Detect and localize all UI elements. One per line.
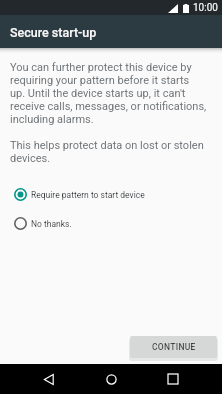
staticText: CONTINUE <box>152 342 196 352</box>
button[interactable]: Home <box>80 364 142 394</box>
button[interactable]: Back <box>18 364 80 394</box>
button[interactable]: Recent apps <box>142 364 204 394</box>
button[interactable]: CONTINUE <box>130 336 217 358</box>
button[interactable]: No thanks. <box>0 209 222 238</box>
staticText: No thanks. <box>31 219 72 229</box>
staticText: You can further protect this device by r… <box>10 61 207 126</box>
staticText: Secure start-up <box>10 25 97 40</box>
staticText: Require pattern to start device <box>31 190 145 200</box>
staticText: 10:00 <box>193 2 218 14</box>
staticText: This helps protect data on lost or stole… <box>10 139 207 165</box>
button[interactable]: Require pattern to start device <box>0 180 222 209</box>
